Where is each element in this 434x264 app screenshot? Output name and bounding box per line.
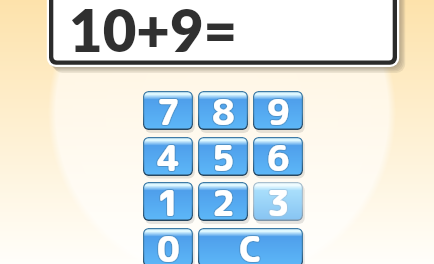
staticText: 7 [158,91,181,126]
staticText: 8 [211,91,234,126]
staticText: 5 [212,137,235,171]
staticText: 0 [158,228,181,262]
button[interactable]: C [198,228,303,264]
staticText: 9 [268,91,291,125]
staticText: 1 [157,182,180,216]
button[interactable]: 6 [253,137,303,176]
staticText: 3 [268,182,291,218]
staticText: 2 [211,182,234,216]
staticText: 6 [266,137,289,172]
staticText: 0 [156,228,179,264]
staticText: 2 [213,182,236,217]
staticText: 2 [212,182,235,218]
staticText: 8 [213,91,236,125]
staticText: C [238,228,261,264]
staticText: 0 [158,228,181,263]
button[interactable]: 2 [198,182,248,221]
staticText: 6 [267,137,290,172]
staticText: 8 [213,91,236,127]
staticText: 2 [211,182,234,218]
staticText: 2 [211,182,234,217]
staticText: 6 [268,137,291,171]
staticText: 9 [268,91,291,127]
staticText: 5 [213,137,236,172]
staticText: 0 [156,228,179,263]
staticText: 6 [267,137,290,173]
staticText: 5 [211,137,234,172]
button[interactable]: 4 [143,137,193,176]
button[interactable]: 0 [143,228,193,264]
staticText: 7 [156,91,179,126]
staticText: 9 [266,91,289,127]
staticText: C [239,228,262,263]
staticText: 4 [156,137,179,173]
staticText: C [240,228,263,264]
staticText: 2 [213,182,236,218]
staticText: C [238,228,261,263]
staticText: 5 [212,137,235,172]
staticText: 9 [267,91,290,127]
button[interactable]: 7 [143,91,193,130]
staticText: 1 [156,182,179,217]
staticText: 5 [212,137,235,173]
staticText: 8 [211,91,234,125]
staticText: 1 [158,182,181,216]
staticText: 8 [212,91,235,127]
staticText: 0 [158,228,181,264]
staticText: C [240,228,263,263]
staticText: 9 [267,91,290,125]
staticText: 9 [267,91,290,126]
staticText: 3 [267,182,290,217]
staticText: 8 [212,91,235,125]
staticText: 6 [268,137,291,172]
staticText: 2 [212,182,235,217]
staticText: 3 [266,182,289,218]
staticText: C [240,228,263,262]
staticText: 0 [157,228,180,262]
staticText: 8 [213,91,236,126]
staticText: 6 [266,137,289,171]
staticText: 4 [157,137,180,172]
staticText: C [239,228,262,262]
staticText: 3 [266,182,289,216]
staticText: 1 [158,182,181,217]
staticText: 4 [157,137,180,171]
staticText: 9 [266,91,289,125]
staticText: 7 [158,91,181,127]
staticText: 7 [157,91,180,125]
staticText: 7 [156,91,179,125]
button[interactable]: 8 [198,91,248,130]
staticText: 2 [213,182,236,216]
staticText: 8 [211,91,234,127]
staticText: 3 [266,182,289,217]
staticText: 4 [158,137,181,171]
staticText: 1 [157,182,180,218]
staticText: 1 [157,182,180,217]
button[interactable]: 9 [253,91,303,130]
staticText: 1 [156,182,179,216]
staticText: 0 [157,228,180,264]
staticText: 8 [212,91,235,126]
staticText: 6 [268,137,291,173]
staticText: 5 [213,137,236,173]
staticText: 10+9= [69,0,238,65]
staticText: 7 [158,91,181,125]
button[interactable]: 3 [253,182,303,221]
staticText: 4 [157,137,180,173]
staticText: C [239,228,262,264]
staticText: 2 [212,182,235,216]
staticText: 6 [266,137,289,173]
staticText: 0 [157,228,180,263]
button[interactable]: 1 [143,182,193,221]
staticText: 3 [267,182,290,216]
staticText: C [238,228,261,262]
staticText: 6 [267,137,290,171]
staticText: 0 [156,228,179,262]
staticText: 4 [158,137,181,172]
staticText: 1 [156,182,179,218]
staticText: 5 [211,137,234,173]
staticText: 1 [158,182,181,218]
button[interactable]: 5 [198,137,248,176]
staticText: 3 [267,182,290,218]
staticText: 5 [211,137,234,171]
